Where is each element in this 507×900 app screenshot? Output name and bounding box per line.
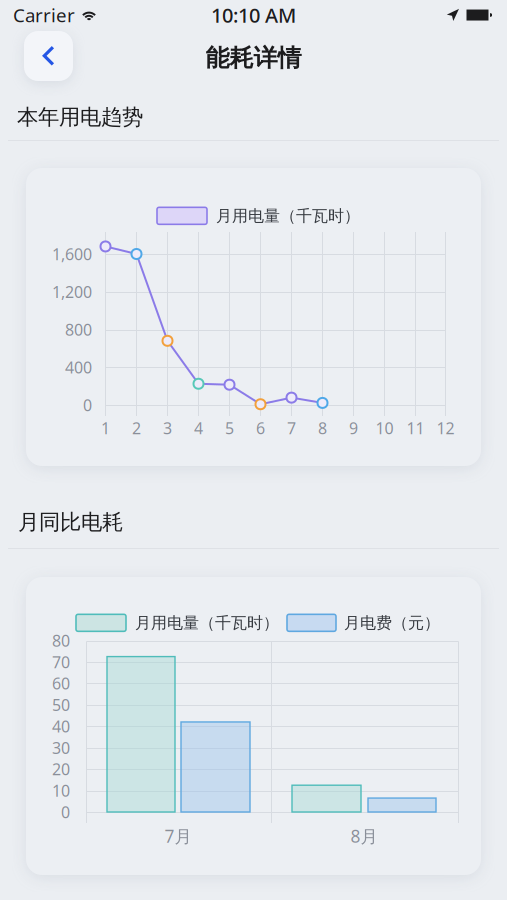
staticText: 月电费（元） [344,613,440,633]
staticText: 10 [375,417,393,439]
staticText: 7 [287,417,296,439]
staticText: 12 [436,417,454,439]
staticText: 3 [163,417,172,439]
staticText: 4 [194,417,203,439]
staticText: 1,200 [52,281,92,302]
staticText: 11 [406,417,424,439]
staticText: 50 [52,694,70,715]
staticText: 30 [52,737,70,758]
staticText: 8 [318,417,327,439]
staticText: 10:10 AM [211,2,296,28]
staticText: 9 [349,417,358,439]
staticText: 能耗详情 [205,43,301,73]
staticText: 0 [83,394,92,416]
staticText: 10 [52,780,70,801]
staticText: 40 [52,716,70,737]
staticText: 70 [52,651,70,672]
staticText: 60 [52,673,70,694]
staticText: 20 [52,758,70,780]
staticText: 本年用电趋势 [17,104,143,130]
staticText: 7月 [164,824,191,847]
staticText: 400 [65,357,92,378]
staticText: 月用电量（千瓦时） [216,206,360,226]
staticText: 8月 [350,824,377,847]
staticText: 800 [65,319,92,340]
staticText: 2 [132,417,141,439]
staticText: 6 [256,417,265,439]
button[interactable]: Back [24,31,73,81]
staticText: 0 [61,801,70,823]
staticText: 1,600 [52,243,92,265]
staticText: 月同比电耗 [18,509,123,535]
staticText: 80 [52,630,70,651]
staticText: 1 [101,417,110,439]
staticText: 5 [225,417,234,439]
staticText: 月用电量（千瓦时） [135,613,279,633]
staticText: Carrier [13,3,75,27]
